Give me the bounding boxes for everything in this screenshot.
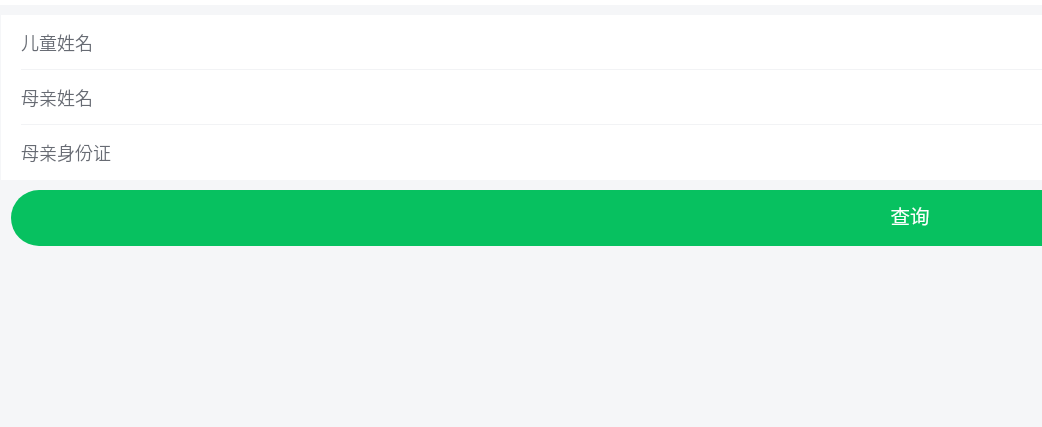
- button[interactable]: 母亲姓名: [0, 70, 1042, 125]
- button[interactable]: 母亲身份证: [0, 125, 1042, 180]
- button[interactable]: 查询 Search: [11, 190, 1042, 246]
- staticText: 母亲姓名: [21, 84, 93, 110]
- staticText: 查询: [890, 201, 930, 229]
- button[interactable]: 儿童姓名: [0, 15, 1042, 70]
- staticText: 母亲身份证: [21, 139, 111, 165]
- staticText: 儿童姓名: [21, 29, 93, 55]
